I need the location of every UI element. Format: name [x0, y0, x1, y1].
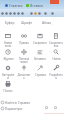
staticText: Новое окно	[1, 41, 15, 47]
staticText: Сохранить как	[49, 41, 63, 47]
staticText: Главная	[9, 3, 23, 8]
button[interactable]: Печать	[0, 79, 16, 95]
button[interactable]: Toolbar button 11	[50, 11, 55, 16]
button[interactable]: Toolbar button 2	[4, 11, 9, 16]
button[interactable]: Дополнить	[16, 63, 32, 79]
staticText: Полный экран	[17, 57, 31, 63]
button[interactable]: Toolbar button 4	[12, 11, 17, 16]
button[interactable]: Вставка	[26, 3, 43, 8]
button[interactable]: Toolbar button 6	[20, 11, 25, 16]
staticText: Абзац	[42, 21, 52, 25]
button[interactable]: Zoom in	[53, 105, 58, 110]
button[interactable]: Правка	[16, 31, 32, 47]
button[interactable]: Настройки	[0, 63, 16, 79]
button[interactable]: Toolbar button 1	[0, 11, 5, 16]
button[interactable]: Toolbar button 8	[33, 11, 38, 16]
staticText: Параметры	[5, 107, 23, 111]
button[interactable]: Справка	[32, 63, 48, 79]
button[interactable]: Журнал	[0, 47, 16, 63]
button[interactable]: Шрифт	[21, 20, 33, 25]
button[interactable]: Zoom out	[44, 105, 49, 110]
staticText: Найти в Справке	[5, 101, 31, 105]
staticText: Разработка	[49, 73, 63, 79]
button[interactable]: Toolbar button 10	[43, 11, 48, 16]
button[interactable]: Найти	[48, 47, 64, 63]
button[interactable]: Toolbar button 5	[16, 11, 21, 16]
button[interactable]: Параметры	[1, 106, 64, 111]
staticText: Буфер	[5, 21, 15, 25]
button[interactable]: Toolbar button 3	[8, 11, 13, 16]
button[interactable]: Сохранить	[32, 31, 48, 47]
staticText: Дополнить	[17, 73, 31, 79]
staticText: Журнал	[3, 57, 14, 61]
staticText: Печать	[3, 89, 13, 93]
button[interactable]: Новое окно	[0, 31, 16, 47]
staticText: Вставка	[30, 3, 43, 8]
button[interactable]: Toolbar button 9	[37, 11, 42, 16]
button[interactable]: Toolbar button 7	[29, 11, 34, 16]
staticText: Найти	[52, 57, 61, 61]
staticText: Вставить	[34, 57, 46, 61]
staticText: Шрифт	[21, 21, 33, 25]
button[interactable]: Абзац	[42, 20, 52, 25]
staticText: Настройки	[1, 73, 15, 79]
staticText: Сохранить	[33, 41, 47, 45]
button[interactable]: Буфер	[5, 20, 15, 25]
button[interactable]: Разработка	[48, 63, 64, 79]
button[interactable]: Главная	[5, 3, 23, 8]
button[interactable]: Сохранить как	[48, 31, 64, 47]
button[interactable]: Найти в Справке	[1, 100, 64, 105]
button[interactable]: Вставить	[32, 47, 48, 63]
staticText: Правка	[19, 41, 29, 45]
staticText: Справка	[35, 73, 46, 77]
button[interactable]: Полный экран	[16, 47, 32, 63]
